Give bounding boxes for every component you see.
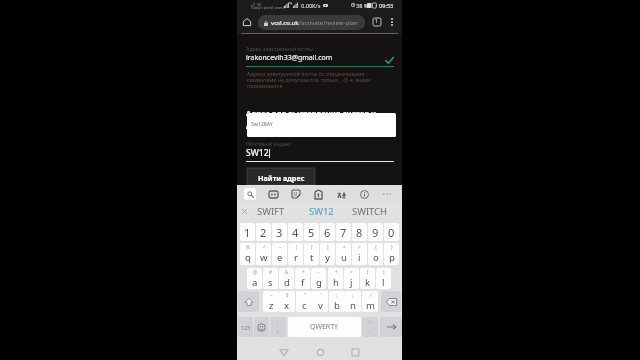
button[interactable]: ~ [263, 291, 279, 312]
button[interactable]: } [384, 243, 399, 265]
staticText: = [350, 269, 353, 275]
staticText: SWIFT [257, 205, 285, 218]
button[interactable]: - [311, 268, 326, 289]
staticText: ~ [279, 244, 282, 250]
button[interactable]: SWIFT [251, 204, 291, 219]
staticText: 4 [292, 225, 299, 240]
staticText: y [325, 251, 330, 264]
button[interactable]: | [288, 243, 303, 265]
staticText: 1 [244, 225, 251, 240]
staticText: Найти адрес [258, 173, 305, 183]
button[interactable]: ' [312, 291, 328, 312]
button[interactable]: 1 [240, 223, 255, 241]
button[interactable]: ) [376, 268, 391, 289]
staticText: @ [253, 269, 258, 275]
button[interactable]: % [240, 243, 255, 265]
button[interactable]: Expand suggestions [238, 204, 250, 219]
button[interactable]: = [344, 268, 359, 289]
button[interactable]: ~ [272, 243, 287, 265]
button[interactable]: Home [313, 345, 327, 359]
staticText: 09:53 [379, 2, 394, 10]
button[interactable]: 5 [304, 223, 319, 241]
staticText: e [277, 251, 283, 264]
button[interactable]: > [352, 243, 367, 265]
button[interactable]: Settings [358, 188, 370, 200]
button[interactable]: < [336, 243, 351, 265]
button[interactable]: Home [241, 15, 253, 29]
staticText: o [373, 251, 379, 264]
button[interactable]: Emoji [254, 317, 269, 337]
staticText: & [285, 269, 289, 275]
button[interactable]: 0 [384, 223, 399, 241]
button[interactable]: Back [277, 345, 291, 359]
button[interactable]: Keyboard modes [267, 188, 279, 200]
staticText: ' [320, 292, 322, 298]
button[interactable]: * [295, 268, 310, 289]
button[interactable]: Clipboard [312, 188, 324, 200]
button[interactable]: Найти адрес [247, 168, 315, 185]
button[interactable]: 3 [272, 223, 287, 241]
button[interactable]: More options [386, 16, 397, 27]
button[interactable]: / [362, 291, 378, 312]
staticText: SW12 [246, 147, 269, 159]
staticText: SW12 [309, 205, 334, 218]
staticText: ) [383, 269, 385, 275]
button[interactable]: Symbols [238, 317, 253, 337]
staticText: 9 [372, 225, 379, 240]
button[interactable]: Shift [238, 291, 259, 312]
button[interactable]: Sw128AY [247, 113, 396, 137]
button[interactable]: + [328, 268, 343, 289]
staticText: 8 [356, 225, 363, 240]
staticText: k [365, 276, 371, 289]
staticText: n [350, 299, 356, 312]
staticText: l [382, 276, 385, 289]
staticText: . [369, 326, 371, 334]
button[interactable]: Backspace [381, 291, 401, 312]
button[interactable]: 2 [256, 223, 271, 241]
button[interactable]: " [296, 291, 312, 312]
staticText: ? [369, 320, 371, 326]
button[interactable]: ; [345, 291, 361, 312]
staticText: 1 [375, 18, 378, 25]
staticText: 123 [241, 324, 250, 331]
staticText: # [269, 269, 272, 275]
staticText: x [284, 299, 290, 312]
staticText: 7 [340, 225, 347, 240]
button[interactable]: : [329, 291, 345, 312]
button[interactable]: Enter [380, 317, 402, 337]
button[interactable]: @ [247, 268, 262, 289]
button[interactable]: { [368, 243, 383, 265]
staticText: u [341, 251, 347, 264]
button[interactable]: Search [244, 188, 256, 200]
button[interactable]: ] [320, 243, 335, 265]
button[interactable]: Translate [335, 188, 347, 200]
button[interactable]: 6 [320, 223, 335, 241]
button[interactable]: [ [304, 243, 319, 265]
button[interactable]: More [381, 188, 393, 200]
staticText: : [336, 292, 338, 298]
button[interactable]: # [263, 268, 278, 289]
staticText: h [333, 276, 339, 289]
staticText: /activate/review-plan [299, 19, 358, 27]
button[interactable]: & [279, 268, 294, 289]
button[interactable]: ! [270, 317, 286, 337]
button[interactable]: Tabs [371, 16, 382, 27]
button[interactable]: $ [279, 291, 295, 312]
button[interactable]: 7 [336, 223, 351, 241]
button[interactable]: 4 [288, 223, 303, 241]
staticText: Адрес электронной почты [246, 45, 314, 52]
button[interactable]: Stickers [290, 188, 302, 200]
button[interactable]: SW12 [301, 204, 341, 219]
button[interactable]: QWERTY [288, 317, 361, 337]
staticText: irakoncevih33@gmail.com [246, 53, 333, 63]
button[interactable]: 9 [368, 223, 383, 241]
button[interactable]: ( [360, 268, 375, 289]
button[interactable]: vcsl.co.uk [258, 15, 365, 30]
staticText: t [310, 251, 314, 264]
button[interactable]: Recents [348, 345, 362, 359]
button[interactable]: SWITCH [346, 204, 392, 219]
staticText: $ [286, 292, 289, 298]
button[interactable]: ^ [256, 243, 271, 265]
button[interactable]: 8 [352, 223, 367, 241]
